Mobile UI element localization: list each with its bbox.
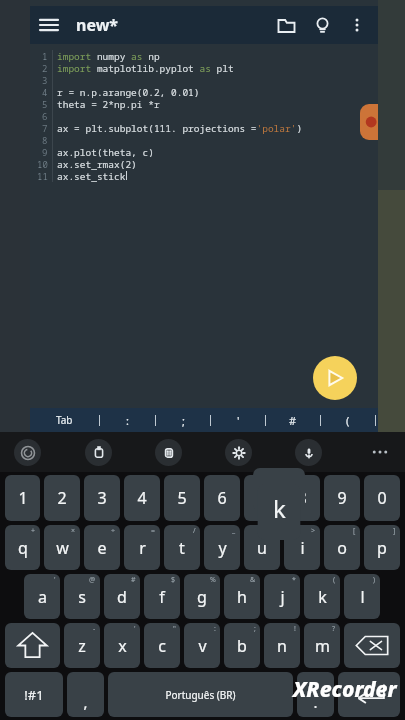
button[interactable]: Tab	[30, 408, 99, 432]
button[interactable]: m	[304, 623, 340, 668]
button[interactable]: ;	[156, 408, 210, 432]
staticText: Tab	[56, 413, 73, 427]
staticText: Português (BR)	[165, 688, 236, 702]
staticText: +	[31, 526, 36, 536]
staticText: 4	[137, 487, 147, 509]
button[interactable]: x	[104, 623, 140, 668]
staticText: 5	[42, 98, 48, 110]
button[interactable]: f	[144, 574, 180, 619]
staticText: 1	[42, 50, 48, 62]
button[interactable]: 6	[204, 475, 240, 521]
button[interactable]: n	[264, 623, 300, 668]
staticText: !	[294, 624, 296, 634]
staticText: t	[179, 537, 185, 559]
button[interactable]: y	[204, 525, 240, 570]
staticText: o	[337, 537, 347, 559]
button[interactable]: Open navigation menu	[30, 6, 68, 44]
button[interactable]: Voice typing suggestions	[14, 439, 41, 466]
staticText: k	[273, 492, 286, 525]
button[interactable]: 7	[244, 475, 280, 521]
button[interactable]: v	[184, 623, 220, 668]
staticText: ,	[83, 692, 88, 712]
staticText: e	[97, 537, 107, 559]
button[interactable]: q	[5, 525, 40, 570]
button[interactable]: o	[324, 525, 360, 570]
button[interactable]: w	[44, 525, 80, 570]
button[interactable]: g	[184, 574, 220, 619]
button[interactable]: ,	[67, 672, 104, 717]
button[interactable]: s	[64, 574, 100, 619]
button[interactable]: p	[364, 525, 400, 570]
button[interactable]: Voice input	[295, 439, 322, 466]
staticText: *	[292, 575, 296, 585]
staticText: ÷	[111, 526, 116, 536]
button[interactable]: c	[144, 623, 180, 668]
button[interactable]: b	[224, 623, 260, 668]
button[interactable]: Enter	[338, 672, 400, 717]
button[interactable]: j	[264, 574, 300, 619]
button[interactable]: More options	[340, 8, 374, 42]
staticText: 7	[42, 122, 48, 134]
button[interactable]: 4	[124, 475, 160, 521]
staticText: ax.plot(theta, c)	[57, 146, 154, 158]
button[interactable]: r	[124, 525, 160, 570]
button[interactable]: 5	[164, 475, 200, 521]
button[interactable]: i	[284, 525, 320, 570]
staticText: #	[289, 413, 297, 428]
button[interactable]: '	[211, 408, 265, 432]
staticText: a	[38, 586, 47, 608]
button[interactable]: z	[64, 623, 100, 668]
button[interactable]: u	[244, 525, 280, 570]
button[interactable]: Settings	[225, 439, 252, 466]
button[interactable]: d	[104, 574, 140, 619]
staticText: :	[214, 624, 216, 634]
button[interactable]: e	[84, 525, 120, 570]
staticText: k	[318, 586, 327, 608]
staticText: ;	[182, 413, 185, 428]
staticText: .	[313, 692, 318, 712]
staticText: 11	[37, 170, 48, 182]
button[interactable]: 2	[44, 475, 80, 521]
staticText: x	[118, 635, 127, 657]
staticText: _	[232, 526, 236, 536]
button[interactable]: 1	[5, 475, 40, 521]
button[interactable]: :	[100, 408, 155, 432]
button[interactable]: 8	[284, 475, 320, 521]
button[interactable]: a	[24, 574, 60, 619]
staticText: /	[193, 526, 196, 536]
staticText: @	[89, 575, 96, 585]
staticText: '	[237, 413, 240, 428]
staticText: s	[78, 586, 86, 608]
staticText: ;	[254, 624, 256, 634]
button[interactable]: 0	[364, 475, 400, 521]
button[interactable]: t	[164, 525, 200, 570]
button[interactable]: Stickers	[155, 439, 182, 466]
button[interactable]: More keyboard options	[365, 437, 395, 467]
button[interactable]: k	[304, 574, 340, 619]
button[interactable]: Shift	[5, 623, 60, 668]
staticText: i	[300, 537, 305, 559]
button[interactable]: h	[224, 574, 260, 619]
staticText: w	[56, 537, 69, 559]
staticText: 8	[297, 487, 307, 509]
button[interactable]: !#1	[5, 672, 63, 717]
button[interactable]: Open file	[268, 7, 304, 43]
button[interactable]: Clipboard	[85, 439, 112, 466]
staticText: 6	[42, 110, 48, 122]
button[interactable]: Delete	[344, 623, 400, 668]
button[interactable]: Hints	[304, 7, 340, 43]
button[interactable]: 3	[84, 475, 120, 521]
button[interactable]: .	[297, 672, 334, 717]
staticText: :	[126, 413, 129, 428]
staticText: n	[277, 635, 287, 657]
staticText: y	[218, 537, 227, 559]
button[interactable]: (	[321, 408, 375, 432]
staticText: '	[134, 624, 136, 634]
button[interactable]: 9	[324, 475, 360, 521]
button[interactable]: l	[344, 574, 380, 619]
staticText: ax.set_stick	[57, 170, 126, 182]
button[interactable]: Português (BR)	[108, 672, 293, 717]
button[interactable]: #	[266, 408, 320, 432]
button[interactable]: Run	[313, 356, 357, 400]
